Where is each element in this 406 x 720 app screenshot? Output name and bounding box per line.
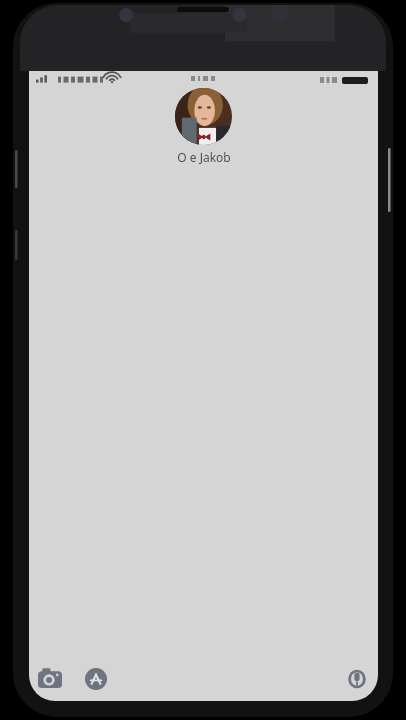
- button[interactable]: Microphone: [342, 664, 372, 694]
- button[interactable]: O e Jakob: [175, 88, 232, 165]
- button[interactable]: Camera: [35, 664, 65, 694]
- button[interactable]: App Store: [81, 664, 111, 694]
- staticText: O e Jakob: [177, 149, 231, 165]
